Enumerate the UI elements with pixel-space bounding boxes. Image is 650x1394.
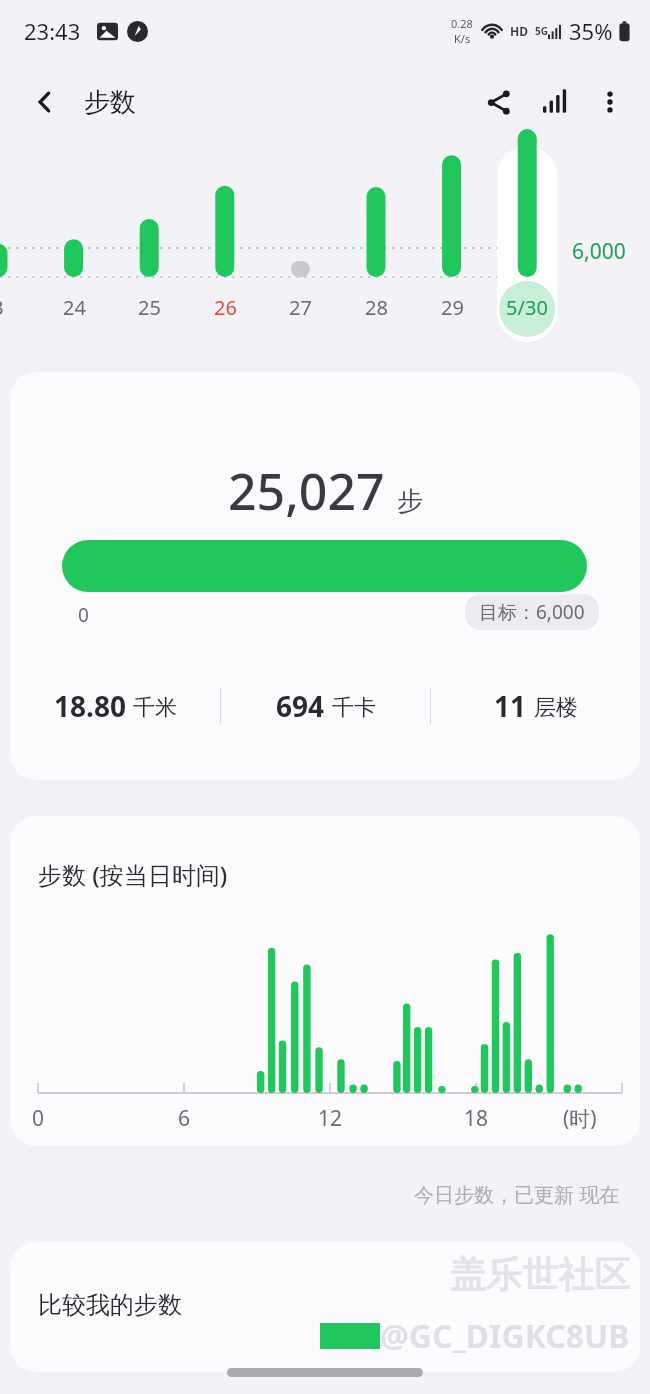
staticText: 步	[397, 485, 423, 518]
staticText: 千卡	[332, 694, 376, 722]
staticText: 0	[78, 602, 89, 628]
staticText: 27	[289, 294, 312, 321]
staticText: 28	[365, 294, 388, 321]
button[interactable]: 18.80	[10, 687, 220, 725]
staticText: 比较我的步数	[38, 1290, 182, 1320]
staticText: 千米	[133, 694, 177, 722]
staticText: 步数	[84, 86, 136, 119]
staticText: 35%	[569, 16, 613, 46]
staticText: @GC_DIGKC8UB	[380, 1314, 630, 1358]
button[interactable]: Back	[20, 77, 70, 127]
staticText: (时)	[563, 1104, 597, 1133]
button[interactable]: More options	[582, 74, 638, 130]
staticText: 23:43	[24, 16, 81, 46]
button[interactable]: 11	[431, 687, 640, 725]
staticText: 5/30	[506, 294, 548, 321]
staticText: 0.28	[451, 16, 473, 31]
staticText: 步数 (按当日时间)	[38, 858, 228, 891]
staticText: 盖乐世社区	[450, 1252, 630, 1297]
staticText: 层楼	[534, 694, 578, 722]
button[interactable]: 步数 (按当日时间)	[10, 816, 640, 1146]
staticText: 25	[138, 294, 161, 321]
staticText: K/s	[454, 31, 471, 46]
staticText: 694	[276, 687, 325, 725]
staticText: 11	[494, 687, 527, 725]
button[interactable]: 694	[221, 687, 430, 725]
staticText: 24	[63, 294, 86, 321]
staticText: 26	[214, 294, 237, 321]
staticText: 12	[318, 1104, 343, 1133]
staticText: 0	[32, 1104, 45, 1133]
staticText: 目标：6,000	[479, 599, 585, 625]
staticText: 25,027	[228, 457, 385, 525]
staticText: 29	[441, 294, 464, 321]
staticText: 6,000	[572, 237, 626, 266]
staticText: 5G	[535, 24, 548, 38]
button[interactable]: 25,027	[10, 372, 640, 780]
button[interactable]: Chart view	[526, 74, 582, 130]
staticText: 今日步数，已更新 现在	[414, 1181, 620, 1208]
staticText: 18.80	[54, 687, 126, 725]
staticText: 3	[0, 294, 4, 321]
staticText: 6	[178, 1104, 191, 1133]
staticText: 18	[464, 1104, 489, 1133]
staticText: HD	[510, 23, 528, 39]
button[interactable]: Share	[470, 74, 526, 130]
button[interactable]: 比较我的步数	[10, 1242, 640, 1372]
